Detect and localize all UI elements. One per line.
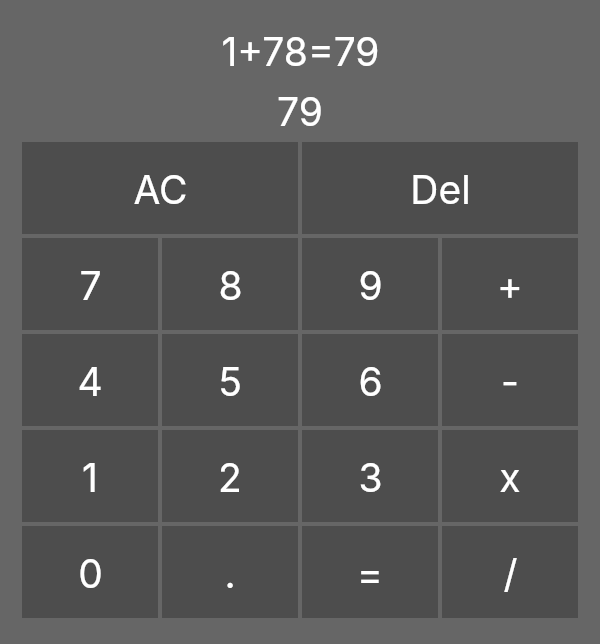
button[interactable]: +	[442, 238, 578, 330]
staticText: 9	[358, 262, 383, 309]
staticText: -	[501, 358, 519, 405]
button[interactable]: 3	[302, 430, 438, 522]
button[interactable]: 6	[302, 334, 438, 426]
button[interactable]: /	[442, 526, 578, 618]
staticText: 1+78=79	[221, 28, 380, 75]
button[interactable]: 8	[162, 238, 298, 330]
staticText: x	[499, 454, 521, 501]
staticText: AC	[133, 166, 188, 213]
button[interactable]: x	[442, 430, 578, 522]
staticText: 4	[77, 358, 103, 405]
staticText: 79	[277, 88, 323, 135]
staticText: .	[224, 550, 236, 597]
button[interactable]: 0	[22, 526, 158, 618]
button[interactable]: 7	[22, 238, 158, 330]
staticText: 7	[79, 262, 102, 309]
staticText: =	[357, 550, 383, 597]
button[interactable]: 1	[22, 430, 158, 522]
staticText: 1	[82, 454, 98, 501]
button[interactable]: 4	[22, 334, 158, 426]
staticText: /	[503, 550, 518, 597]
button[interactable]: Del	[302, 142, 578, 234]
button[interactable]: =	[302, 526, 438, 618]
button[interactable]: .	[162, 526, 298, 618]
staticText: 5	[218, 358, 242, 405]
button[interactable]: AC	[22, 142, 298, 234]
staticText: 0	[78, 550, 103, 597]
button[interactable]: 2	[162, 430, 298, 522]
staticText: 3	[358, 454, 383, 501]
staticText: Del	[410, 166, 471, 213]
staticText: 6	[358, 358, 383, 405]
staticText: 8	[218, 262, 243, 309]
button[interactable]: 5	[162, 334, 298, 426]
button[interactable]: 9	[302, 238, 438, 330]
staticText: 2	[218, 454, 242, 501]
staticText: +	[497, 262, 523, 309]
button[interactable]: -	[442, 334, 578, 426]
